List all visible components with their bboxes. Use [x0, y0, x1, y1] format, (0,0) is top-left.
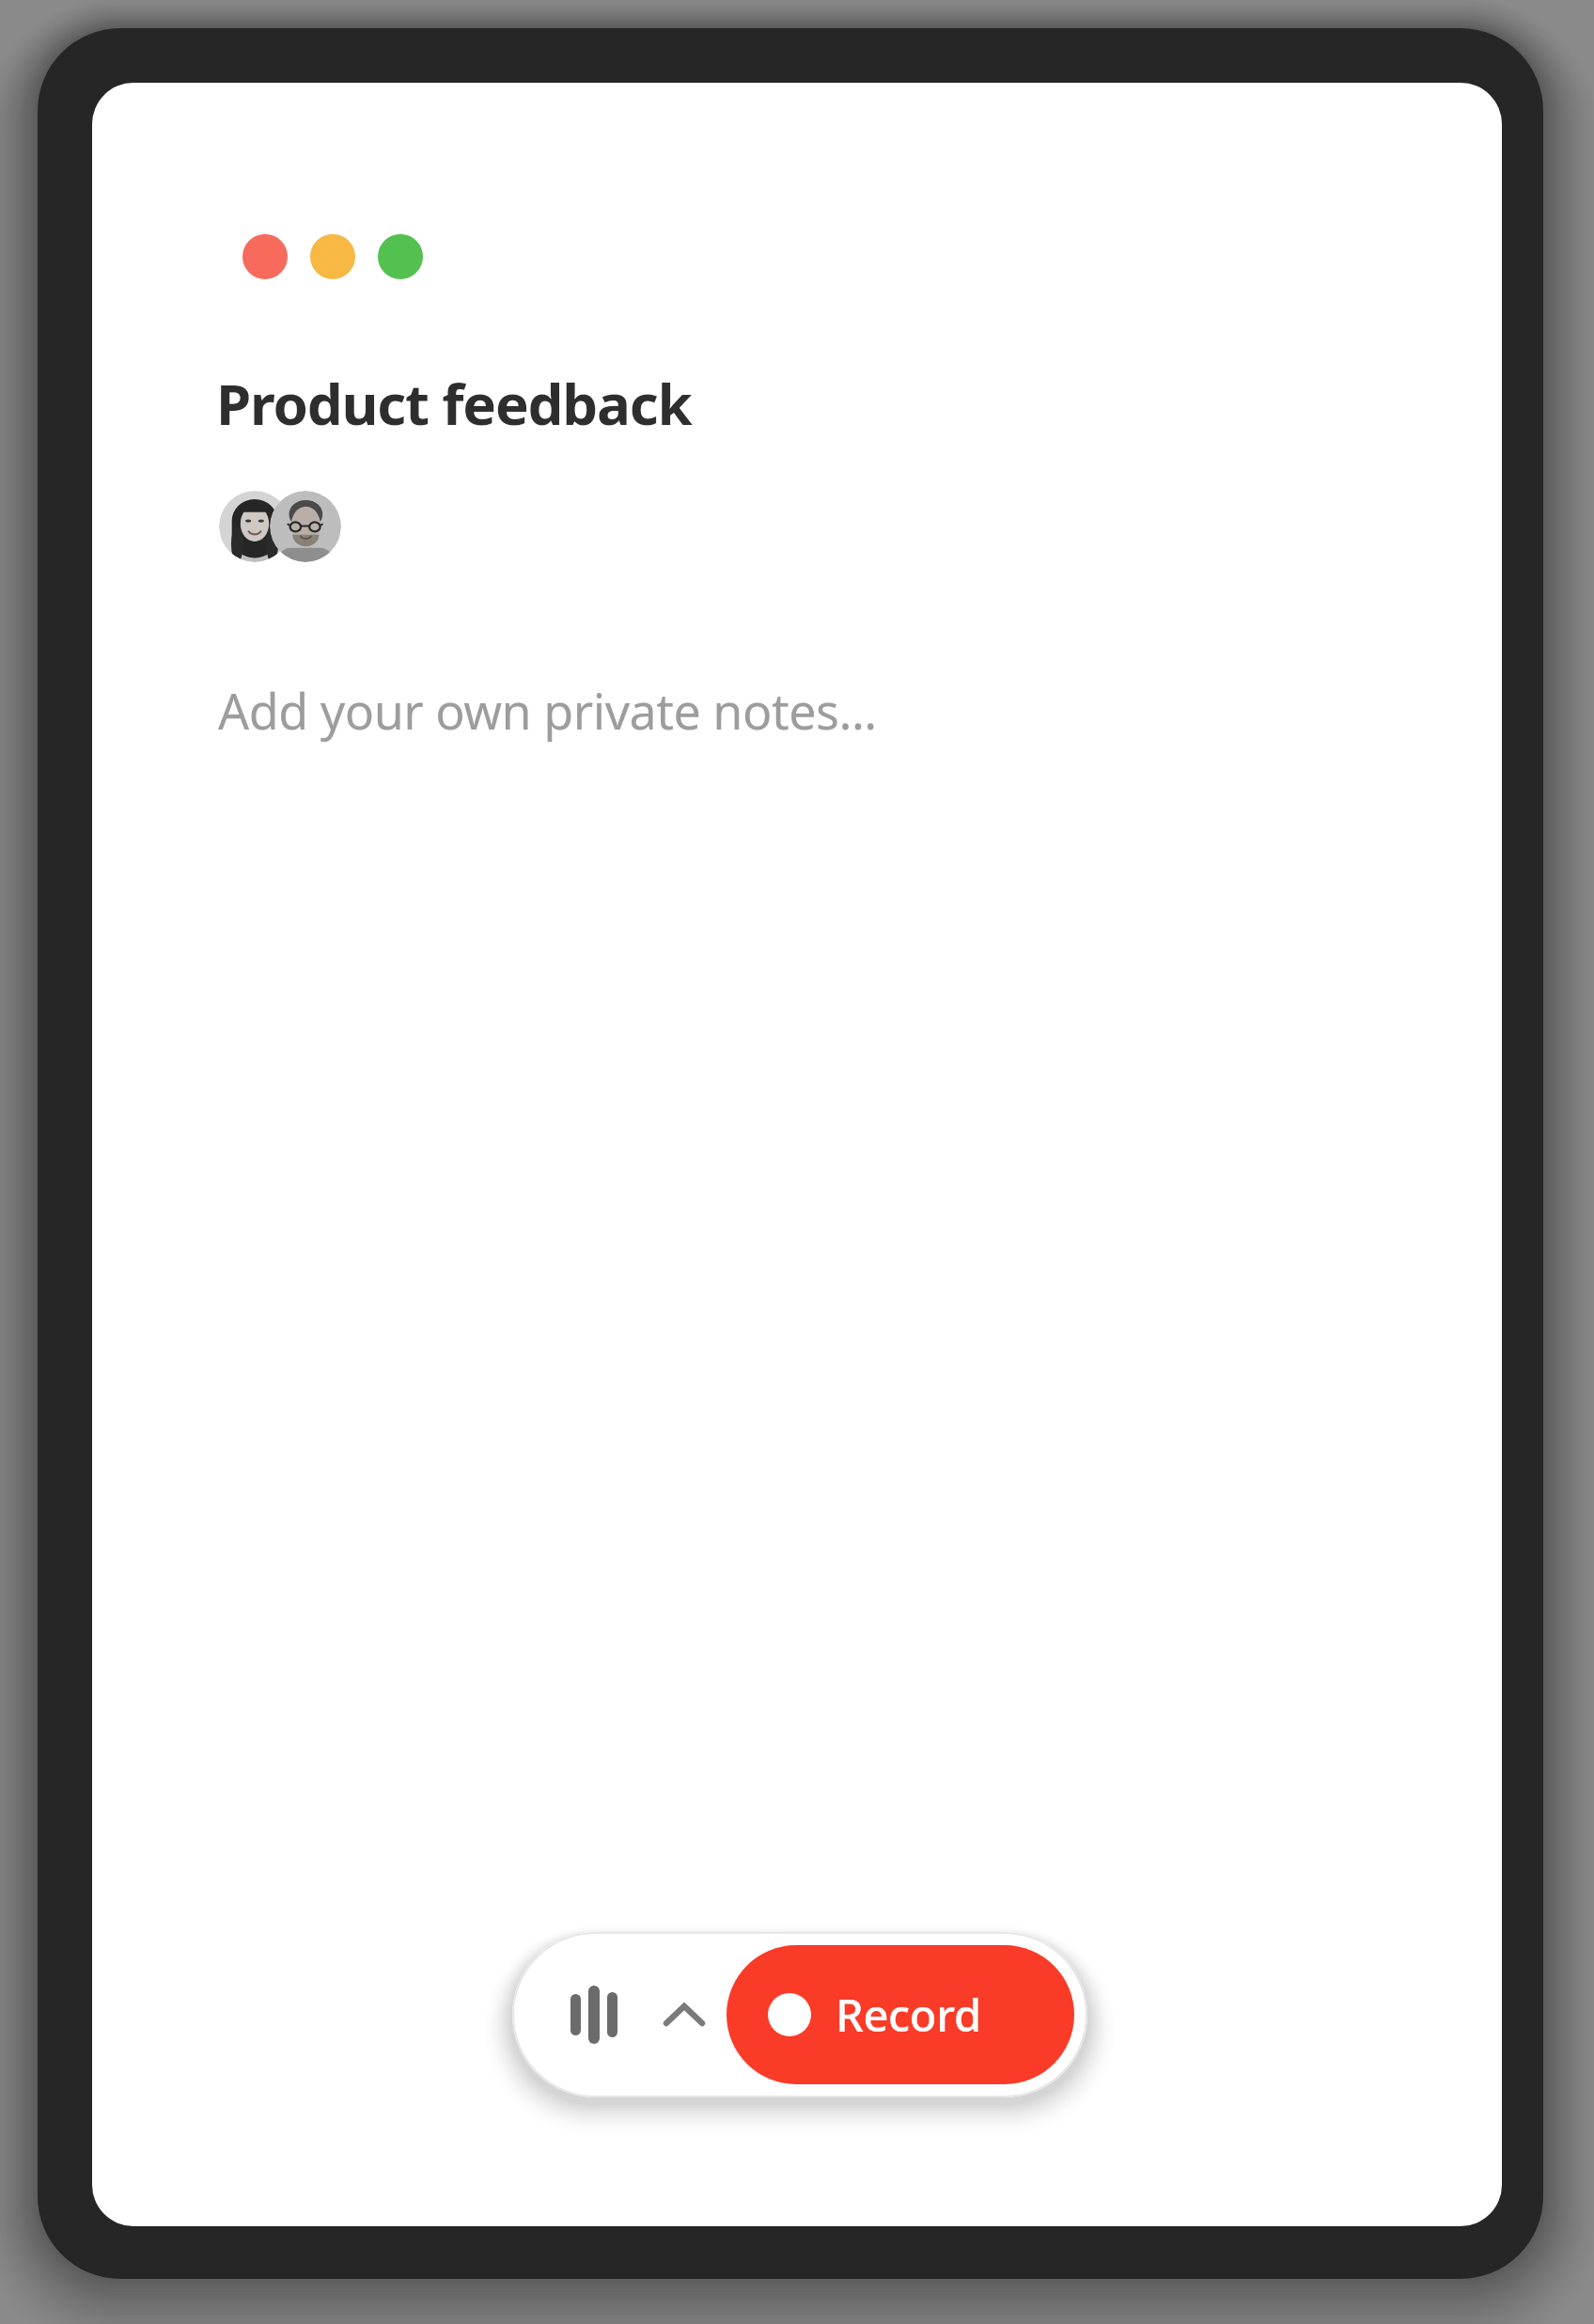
button[interactable]: Minimize — [310, 234, 355, 279]
button[interactable]: Participant avatar — [270, 491, 341, 562]
staticText: Add your own private notes... — [218, 677, 877, 744]
staticText: Record — [836, 1985, 981, 2045]
button[interactable]: Record — [727, 1945, 1074, 2084]
button[interactable]: Add your own private notes... — [92, 647, 1502, 1907]
button[interactable]: Audio waveform — [550, 1932, 640, 2097]
button[interactable]: Close — [242, 234, 288, 279]
button[interactable]: Expand options — [642, 1932, 727, 2097]
button[interactable]: Maximize — [378, 234, 423, 279]
button[interactable]: Participant avatar — [219, 491, 290, 562]
staticText: Product feedback — [216, 365, 692, 442]
